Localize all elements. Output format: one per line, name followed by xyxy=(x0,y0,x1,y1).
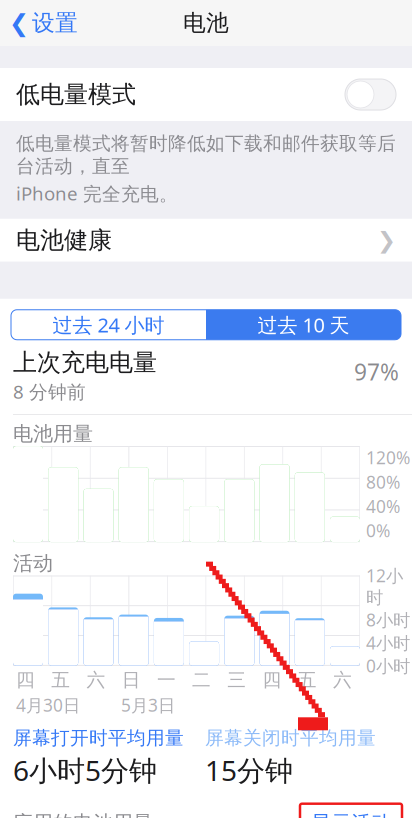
staticText: 4月30日 xyxy=(16,694,80,717)
staticText: 二 xyxy=(192,669,211,691)
button[interactable]: 过去 10 天 xyxy=(206,310,401,340)
staticText: 四 xyxy=(263,669,282,691)
staticText: 三 xyxy=(227,669,246,691)
staticText: 显示活动 xyxy=(311,811,391,818)
staticText: ❯ xyxy=(377,227,396,253)
staticText: 40% xyxy=(366,495,400,518)
staticText: 过去 24 小时 xyxy=(52,311,164,338)
staticText: iPhone 完全充电。 xyxy=(16,181,178,206)
button[interactable]: 过去 24 小时 xyxy=(11,310,206,340)
staticText: 4小时 xyxy=(366,631,410,654)
staticText: 97% xyxy=(354,357,399,387)
staticText: 四 xyxy=(16,669,35,691)
staticText: 电池健康 xyxy=(16,225,112,255)
staticText: 80% xyxy=(366,470,400,493)
staticText: 五 xyxy=(51,669,70,691)
staticText: ❮ xyxy=(9,9,29,37)
button[interactable]: 低电量模式开关 xyxy=(345,79,396,110)
staticText: 活动 xyxy=(13,551,53,576)
staticText: 低电量模式 xyxy=(16,80,136,109)
staticText: 低电量模式将暂时降低如下载和邮件获取等后台活动，直至 xyxy=(16,132,396,178)
staticText: 设置 xyxy=(32,9,78,37)
staticText: 上次充电电量 xyxy=(13,348,157,377)
staticText: 6小时5分钟 xyxy=(13,751,157,789)
staticText: 六 xyxy=(86,669,105,691)
staticText: 12小时 xyxy=(366,564,403,608)
staticText: 屏幕关闭时平均用量 xyxy=(205,727,376,749)
staticText: 0% xyxy=(366,519,390,542)
staticText: 过去 10 天 xyxy=(257,311,349,338)
staticText: 120% xyxy=(366,446,410,469)
staticText: 0小时 xyxy=(366,654,410,677)
staticText: 电池 xyxy=(183,9,229,37)
button[interactable]: 电池健康 xyxy=(0,219,412,262)
button[interactable]: ❮ xyxy=(0,1,87,45)
staticText: 8 分钟前 xyxy=(13,379,86,404)
staticText: 屏幕打开时平均用量 xyxy=(13,727,184,749)
staticText: 电池用量 xyxy=(13,421,93,446)
staticText: 5月3日 xyxy=(121,694,175,717)
staticText: 一 xyxy=(157,669,176,691)
button[interactable]: 显示活动 xyxy=(300,804,402,818)
staticText: 日 xyxy=(122,669,141,691)
staticText: 应用的电池用量 xyxy=(13,811,153,818)
staticText: 15分钟 xyxy=(205,751,293,789)
staticText: 五 xyxy=(298,669,317,691)
staticText: 8小时 xyxy=(366,608,410,631)
staticText: 六 xyxy=(333,669,352,691)
